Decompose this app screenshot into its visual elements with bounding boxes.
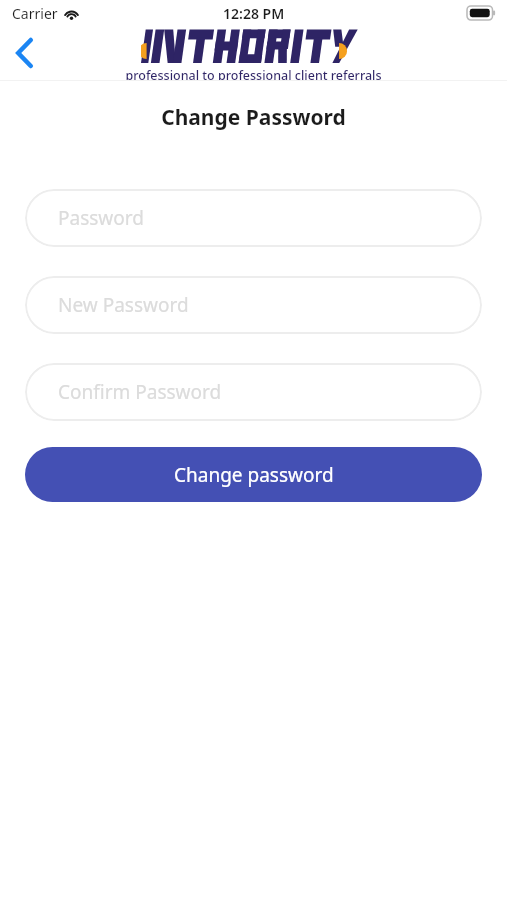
staticText: Change password	[174, 462, 334, 488]
button[interactable]: Confirm Password	[25, 363, 482, 421]
staticText: Carrier	[12, 4, 58, 23]
staticText: New Password	[58, 292, 189, 318]
button[interactable]: Password	[25, 189, 482, 247]
button[interactable]: New Password	[25, 276, 482, 334]
staticText: Confirm Password	[58, 379, 222, 405]
staticText: 12:28 PM	[223, 4, 285, 23]
staticText: Change Password	[0, 103, 507, 132]
button[interactable]: Change password	[25, 447, 482, 502]
staticText: Password	[58, 205, 144, 231]
button[interactable]: Back	[0, 29, 48, 77]
staticText: professional to professional client refe…	[125, 67, 382, 81]
